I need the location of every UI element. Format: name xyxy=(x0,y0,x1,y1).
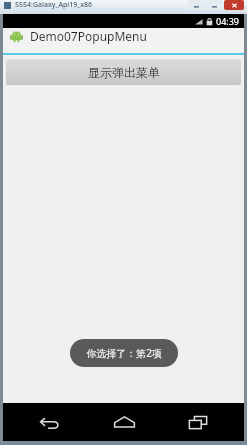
staticText: 04:39 xyxy=(216,15,240,27)
button[interactable]: Home xyxy=(95,403,153,441)
staticText: 显示弹出菜单 xyxy=(88,65,160,80)
staticText: 5554:Galaxy_Api19_x86 xyxy=(15,0,93,10)
staticText: 你选择了：第2项 xyxy=(86,346,162,360)
button[interactable]: 显示弹出菜单 xyxy=(6,59,241,85)
button[interactable]: Window button xyxy=(206,0,223,10)
button[interactable]: Close xyxy=(224,0,244,10)
staticText: Demo07PopupMenu xyxy=(30,28,147,44)
button[interactable]: Back xyxy=(20,403,78,441)
button[interactable]: Window button xyxy=(188,0,205,10)
button[interactable]: Recent apps xyxy=(169,403,227,441)
